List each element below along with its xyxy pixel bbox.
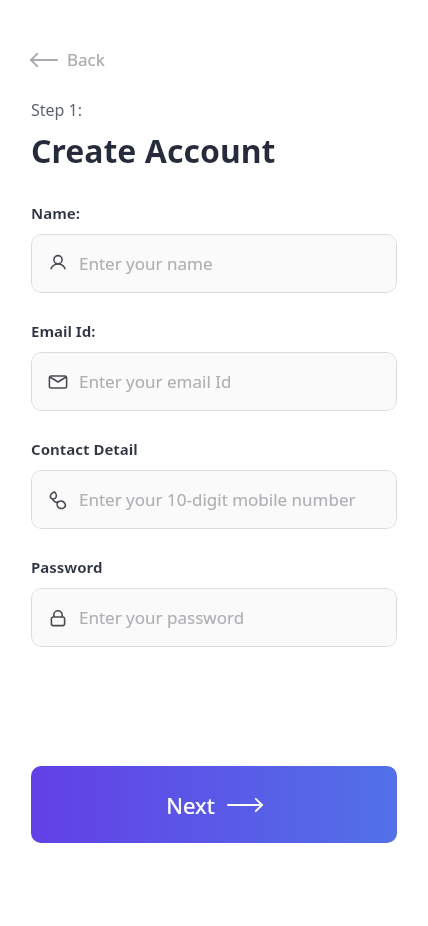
button[interactable]: Next [31, 766, 397, 843]
staticText: Enter your email Id [79, 370, 232, 393]
button[interactable]: Enter your 10-digit mobile number [31, 470, 397, 529]
staticText: Back [67, 48, 105, 71]
staticText: Enter your 10-digit mobile number [79, 488, 356, 511]
staticText: Create Account [31, 129, 276, 173]
button[interactable]: Back [22, 42, 114, 77]
staticText: Enter your name [79, 252, 213, 275]
staticText: Contact Detail [31, 439, 138, 459]
button[interactable]: Enter your email Id [31, 352, 397, 411]
staticText: Enter your password [79, 606, 245, 629]
staticText: Password [31, 557, 103, 577]
staticText: Email Id: [31, 321, 96, 341]
button[interactable]: Enter your password [31, 588, 397, 647]
button[interactable]: Enter your name [31, 234, 397, 293]
staticText: Name: [31, 203, 80, 223]
staticText: Next [166, 790, 215, 820]
staticText: Step 1: [31, 99, 83, 121]
